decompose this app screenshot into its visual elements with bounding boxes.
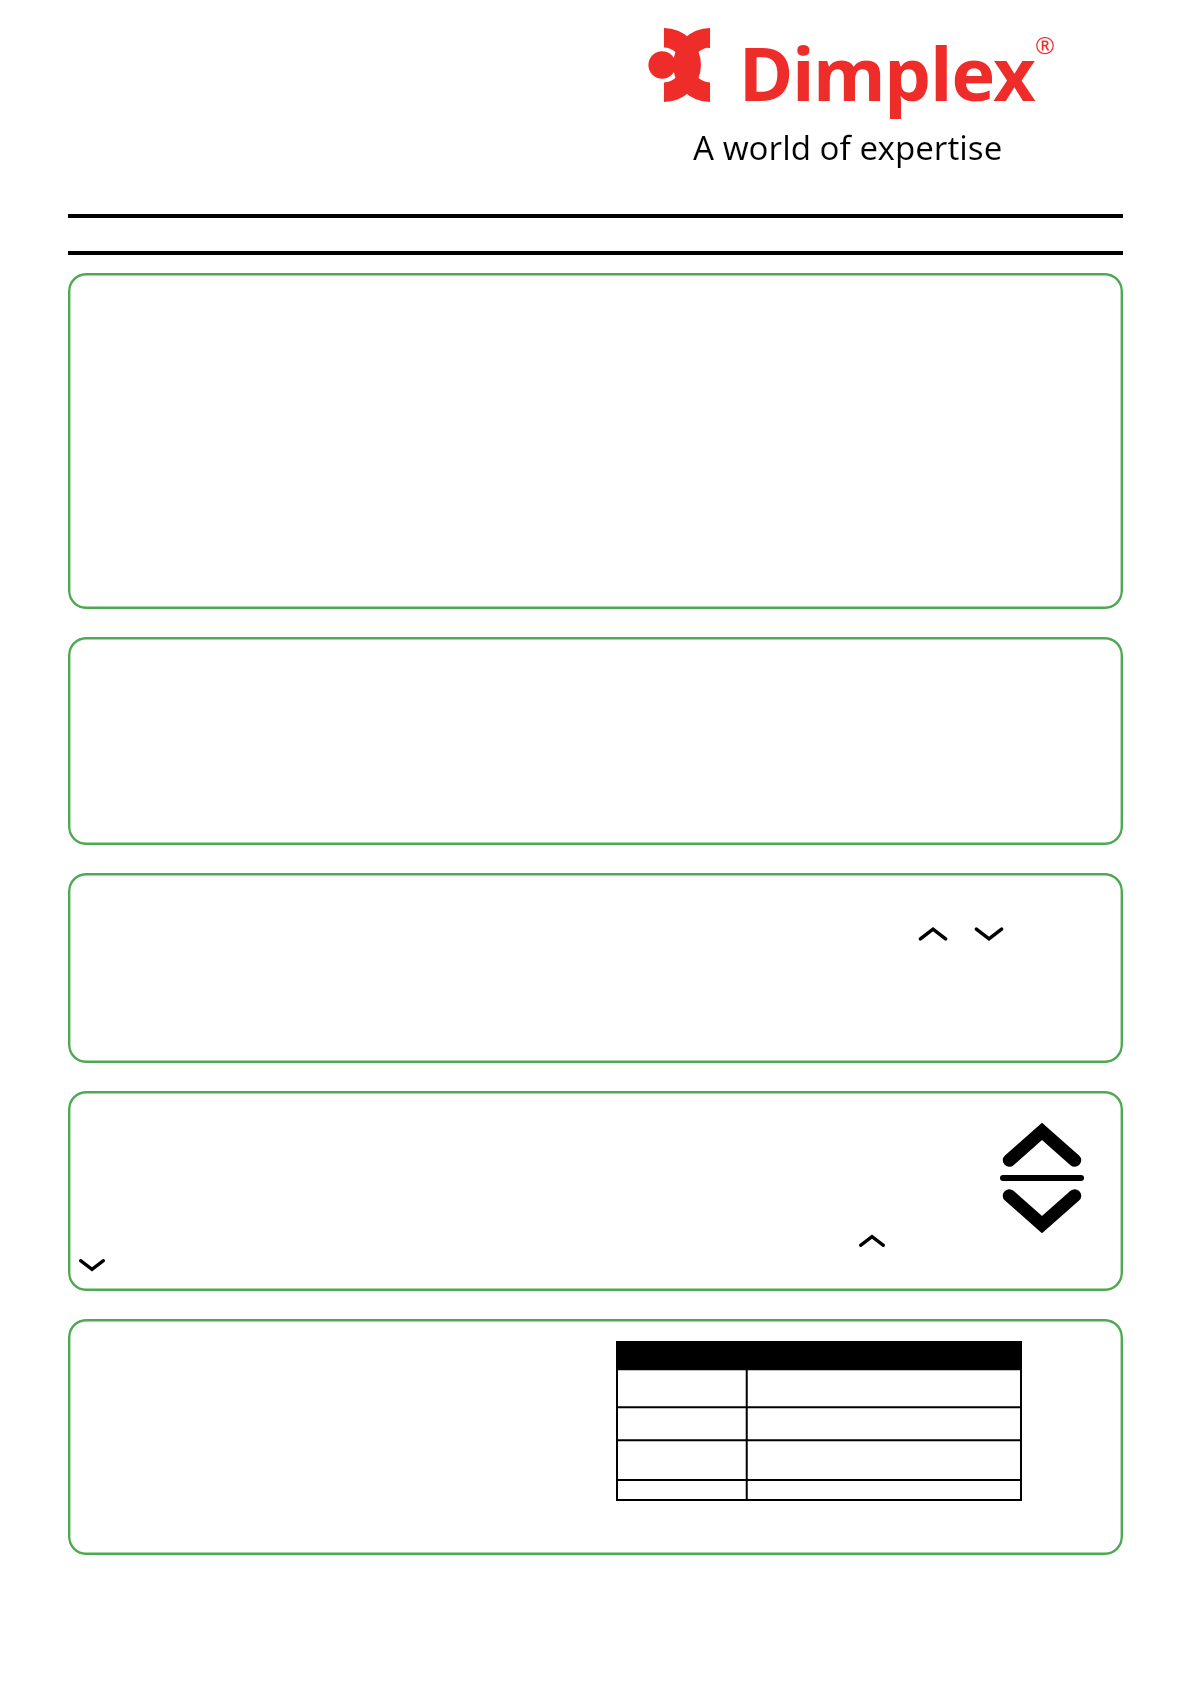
button[interactable]: Dimplex – A world of expertise	[641, 22, 1055, 170]
button[interactable]: Scroll up	[1003, 1119, 1081, 1167]
button[interactable]: Increase	[912, 913, 954, 955]
staticText: ®	[1035, 28, 1055, 61]
button[interactable]	[68, 1319, 1123, 1555]
staticText: Dimplex	[739, 22, 1035, 123]
button[interactable]: Scroll down	[1003, 1189, 1081, 1237]
staticText: A world of expertise	[693, 125, 1003, 170]
button[interactable]: Decrease	[968, 913, 1010, 955]
button[interactable]: Collapse	[73, 1246, 111, 1284]
button[interactable]: Expand	[853, 1222, 891, 1260]
button[interactable]	[68, 637, 1123, 845]
button[interactable]: Increase	[68, 873, 1123, 1063]
button[interactable]: Scroll up	[68, 1091, 1123, 1291]
button[interactable]	[68, 273, 1123, 609]
